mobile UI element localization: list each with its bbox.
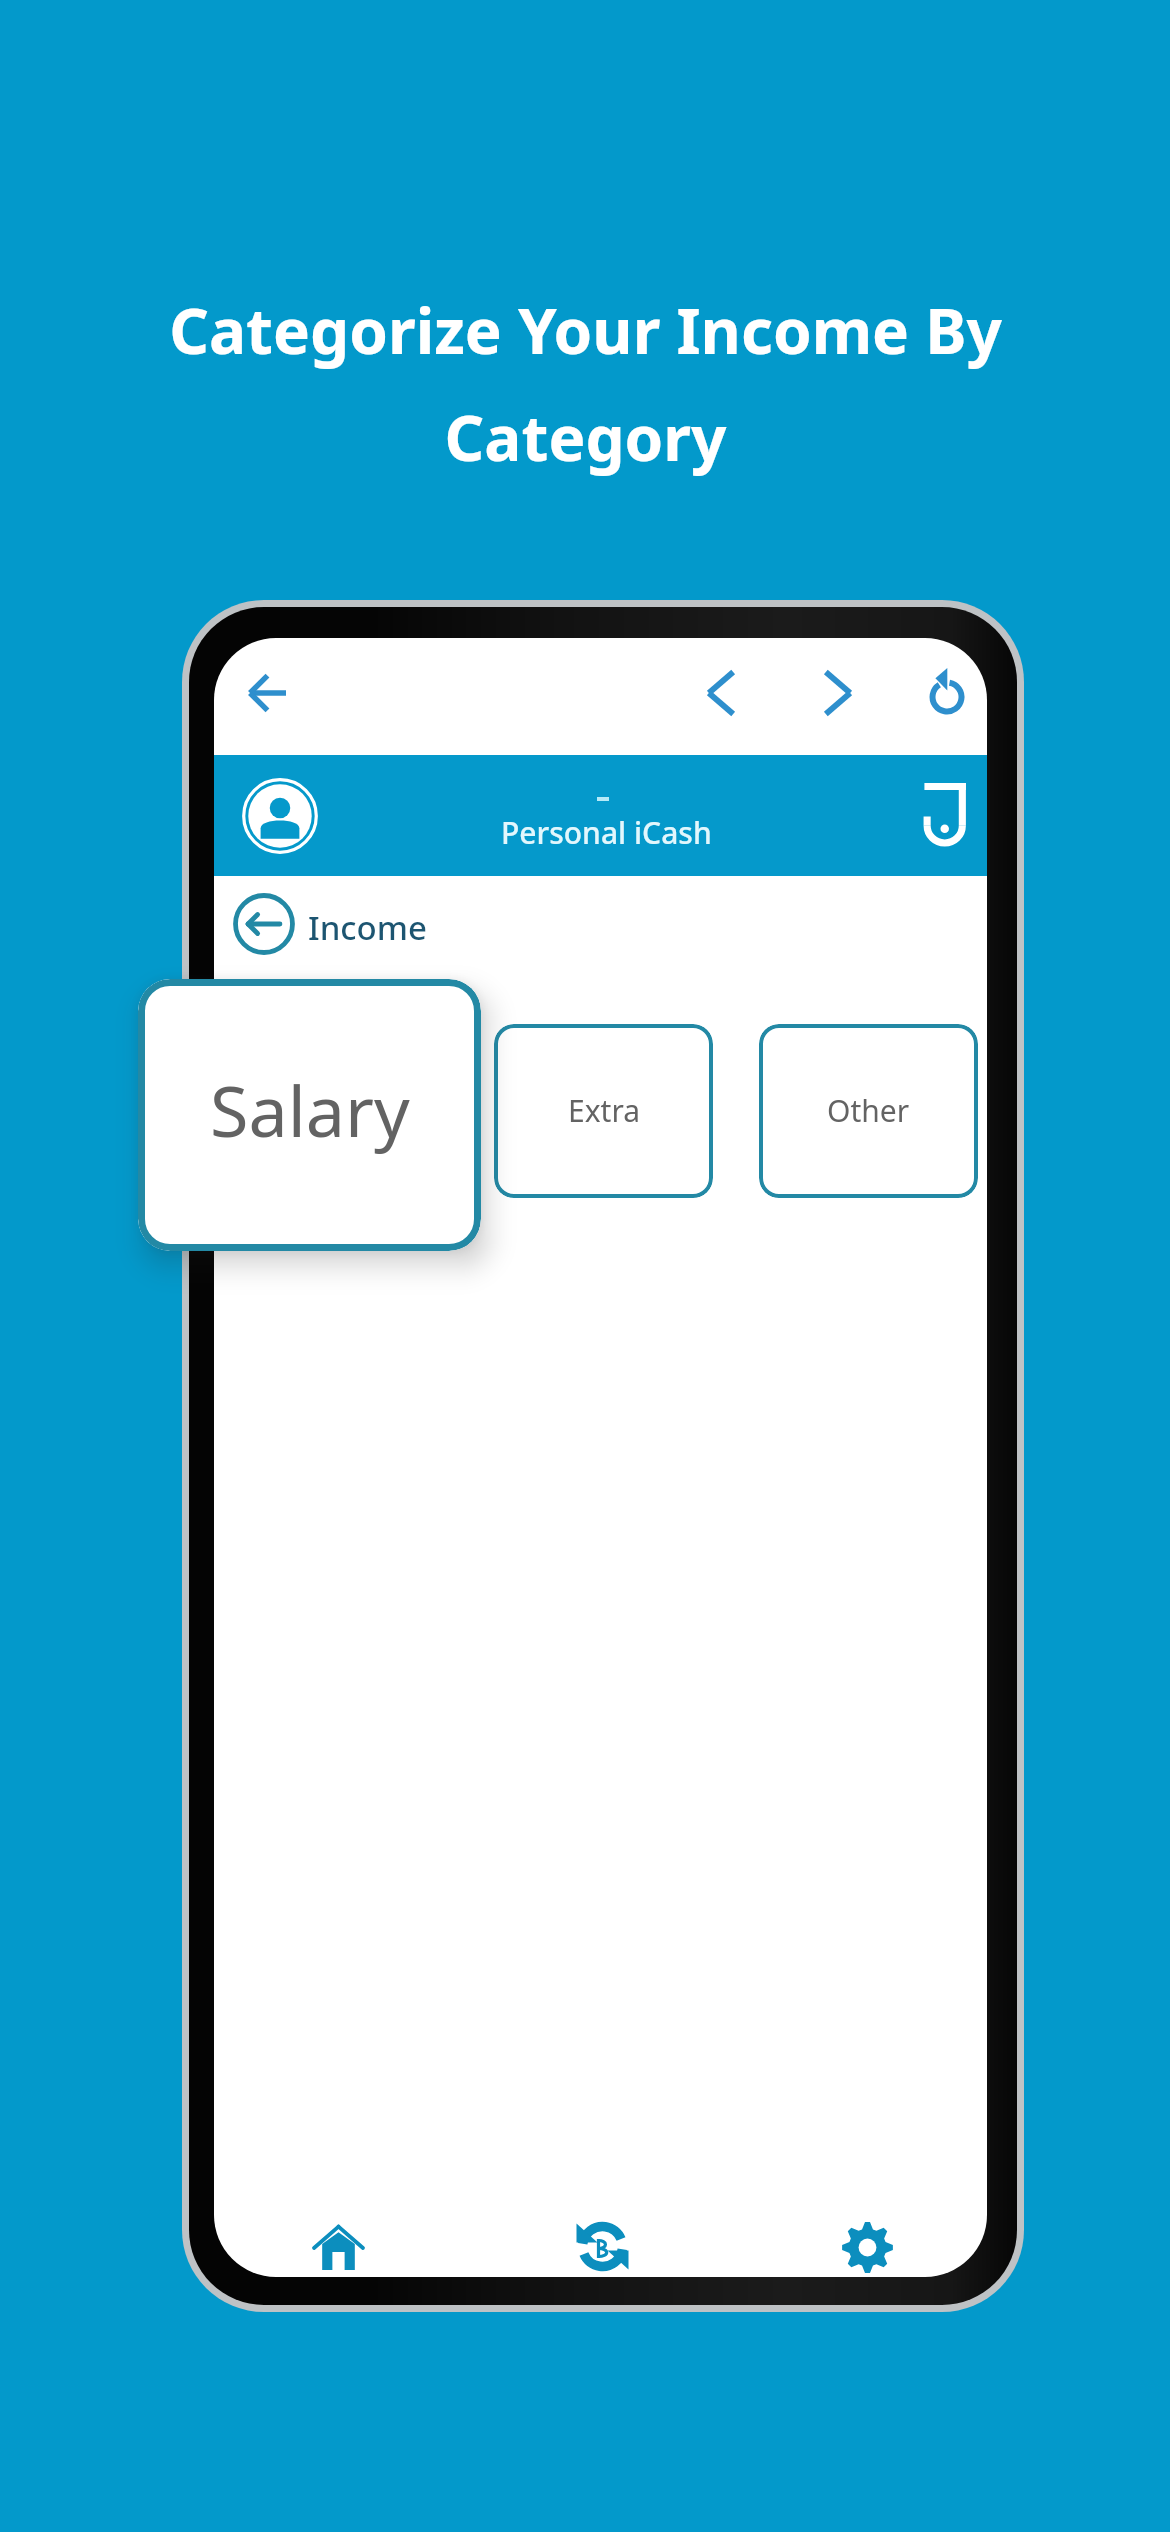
staticText: Categorize Your Income By Category bbox=[169, 288, 1002, 479]
button[interactable]: Home bbox=[300, 2209, 376, 2277]
staticText: Extra bbox=[568, 1090, 640, 1131]
staticText: Income bbox=[308, 905, 427, 950]
button[interactable]: Salary bbox=[138, 979, 481, 1251]
button[interactable]: Settings bbox=[829, 2209, 905, 2277]
staticText: Other bbox=[827, 1090, 910, 1131]
button[interactable]: Sync budget bbox=[564, 2208, 640, 2277]
button[interactable]: Back bbox=[232, 892, 296, 956]
staticText: Salary bbox=[210, 1062, 410, 1157]
button[interactable]: Other bbox=[759, 1024, 978, 1198]
staticText: Personal iCash bbox=[501, 812, 712, 853]
button[interactable]: Extra bbox=[494, 1024, 713, 1198]
